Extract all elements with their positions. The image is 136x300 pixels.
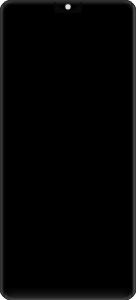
button[interactable]: Phone screen [0,0,136,300]
